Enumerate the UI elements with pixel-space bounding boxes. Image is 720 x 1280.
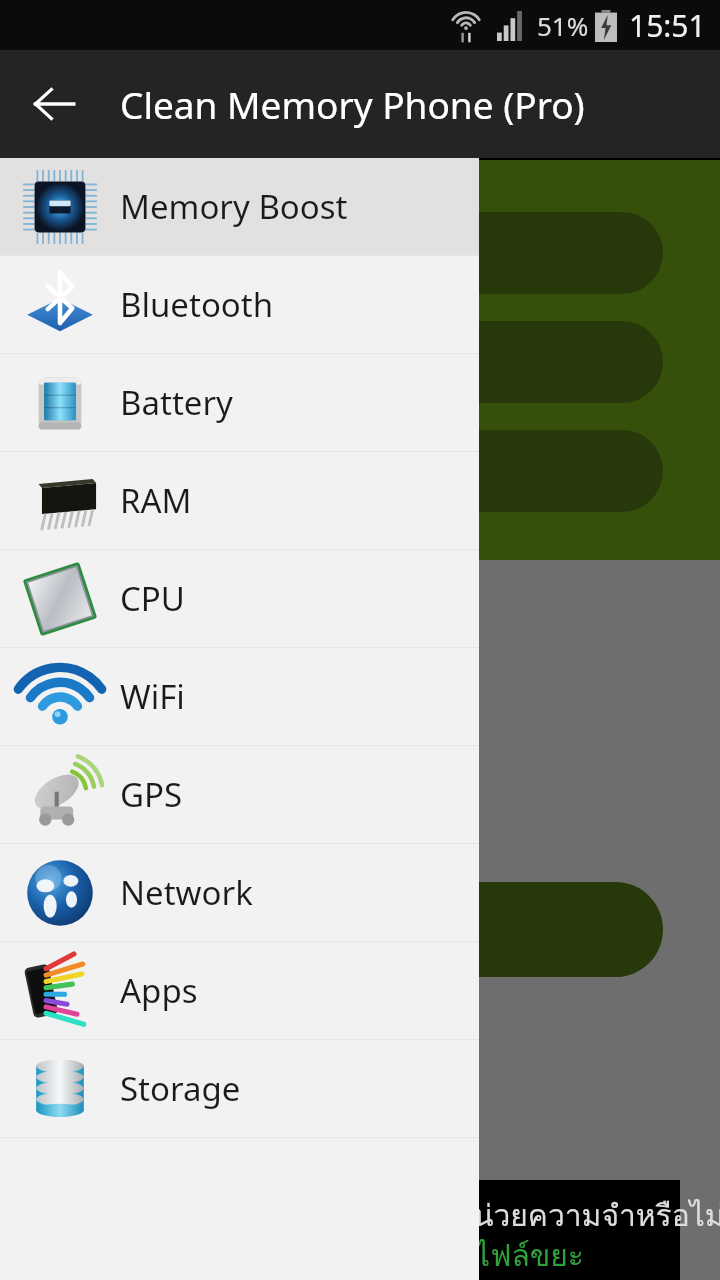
button[interactable]: Network xyxy=(0,844,479,941)
staticText: RAM xyxy=(120,478,192,523)
staticText: Storage xyxy=(120,1066,241,1111)
button[interactable]: WiFi xyxy=(0,648,479,745)
staticText: 51% xyxy=(537,8,589,43)
staticText: CPU xyxy=(120,576,185,621)
button[interactable]: CPU xyxy=(0,550,479,647)
staticText: Cleaned: 232 MB xyxy=(150,690,418,736)
staticText: Clean Memory Phone (Pro) xyxy=(120,79,585,129)
button[interactable]: Memory Boost xyxy=(0,158,479,255)
staticText: Battery xyxy=(120,380,233,425)
button[interactable]: Battery xyxy=(0,354,479,451)
button[interactable]: Bluetooth xyxy=(0,256,479,353)
button[interactable]: RAM xyxy=(0,452,479,549)
button[interactable]: GPS xyxy=(0,746,479,843)
button[interactable]: ต้องการล้างหน่วยความจำหรือไม่? xyxy=(0,1180,680,1280)
staticText: 2025-11-05 15:50:33 xyxy=(150,592,472,638)
staticText: Free now: 1.02 GB xyxy=(150,772,437,818)
staticText: 15:51 xyxy=(629,5,706,46)
staticText: ต้องการล้างหน่วยความจำหรือไม่? xyxy=(300,1192,720,1240)
staticText: Bluetooth xyxy=(120,282,274,327)
staticText: WiFi xyxy=(120,674,185,719)
staticText: Network xyxy=(120,870,253,915)
button[interactable]: Used: 745 MB xyxy=(30,212,663,294)
button[interactable]: Total: 1.74 GB xyxy=(30,430,663,512)
button[interactable]: Back xyxy=(18,68,90,140)
button[interactable]: Storage xyxy=(0,1040,479,1137)
staticText: Apps xyxy=(120,968,198,1013)
staticText: Memory Boost xyxy=(120,184,348,229)
staticText: แตะเพื่อกำจัดไฟล์ขยะ xyxy=(300,1232,584,1280)
staticText: Used: 745 MB xyxy=(70,227,316,279)
button[interactable]: Apps xyxy=(0,942,479,1039)
staticText: Total: 1.74 GB xyxy=(70,445,314,497)
button[interactable]: Free: 1.02 GB xyxy=(30,321,663,403)
button[interactable]: Boost xyxy=(30,882,663,977)
staticText: Free: 1.02 GB xyxy=(70,336,306,388)
staticText: GPS xyxy=(120,772,183,817)
